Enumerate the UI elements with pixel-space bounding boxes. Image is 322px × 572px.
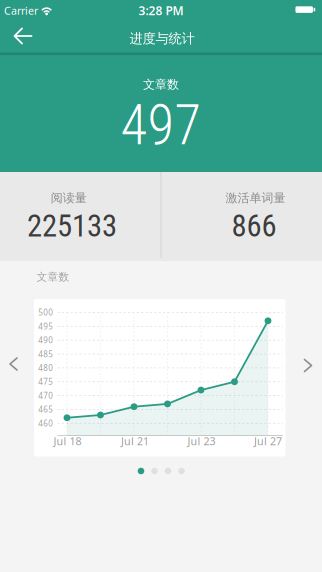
- staticText: 485: [38, 349, 53, 359]
- staticText: 阅读量: [51, 191, 87, 205]
- staticText: Jul 27: [254, 434, 282, 448]
- staticText: 465: [38, 404, 53, 415]
- staticText: Jul 18: [53, 434, 81, 448]
- staticText: 文章数: [143, 77, 179, 92]
- staticText: Jul 23: [187, 434, 215, 448]
- staticText: 进度与统计: [129, 30, 194, 47]
- staticText: Jul 21: [121, 434, 149, 448]
- button[interactable]: Back: [6, 28, 40, 44]
- button[interactable]: Previous chart: [3, 354, 23, 374]
- staticText: 500: [38, 307, 53, 318]
- staticText: 3:28 PM: [138, 2, 183, 18]
- staticText: 497: [120, 93, 201, 158]
- staticText: 225133: [27, 208, 117, 244]
- staticText: 480: [38, 363, 53, 373]
- staticText: 475: [38, 376, 53, 387]
- staticText: 文章数: [36, 270, 69, 283]
- staticText: 495: [38, 321, 53, 332]
- staticText: Carrier: [4, 3, 38, 18]
- staticText: 470: [38, 390, 53, 401]
- staticText: 激活单词量: [225, 191, 285, 205]
- staticText: 490: [38, 335, 53, 345]
- button[interactable]: Next chart: [298, 355, 318, 375]
- staticText: 460: [38, 418, 53, 429]
- staticText: 866: [231, 208, 276, 244]
